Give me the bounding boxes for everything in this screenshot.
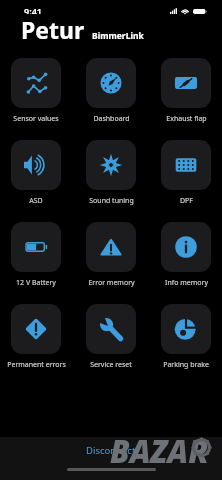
button[interactable]: Permanent errors [11, 304, 61, 370]
staticText: Exhaust flap [166, 114, 207, 124]
staticText: 12 V Battery [16, 278, 56, 288]
button[interactable]: 12 V Battery [11, 222, 61, 288]
button[interactable]: ASD [11, 140, 61, 206]
staticText: Disconnect [86, 444, 136, 457]
staticText: Error memory [88, 278, 135, 288]
staticText: Petur [21, 14, 85, 45]
button[interactable]: Exhaust flap [161, 58, 211, 124]
staticText: Service reset [90, 360, 132, 370]
staticText: BimmerLink [92, 30, 144, 42]
button[interactable]: Disconnect [72, 441, 150, 460]
staticText: Info memory [165, 278, 208, 288]
staticText: Sensor values [13, 114, 59, 124]
button[interactable]: Info memory [161, 222, 211, 288]
button[interactable]: Error memory [86, 222, 136, 288]
staticText: Permanent errors [7, 360, 66, 370]
staticText: DPF [180, 196, 193, 206]
button[interactable]: DPF [161, 140, 211, 206]
button[interactable]: Service reset [86, 304, 136, 370]
staticText: 9:41 [24, 5, 42, 14]
staticText: Sound tuning [89, 196, 134, 206]
button[interactable]: Parking brake [161, 304, 211, 370]
button[interactable]: Sound tuning [86, 140, 136, 206]
staticText: ASD [29, 196, 43, 206]
staticText: BAZAR [110, 430, 209, 472]
staticText: Dashboard [93, 114, 130, 124]
button[interactable]: Dashboard [86, 58, 136, 124]
button[interactable]: Sensor values [11, 58, 61, 124]
staticText: Parking brake [163, 360, 209, 370]
